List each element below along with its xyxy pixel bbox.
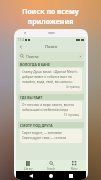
button[interactable]: More xyxy=(63,160,86,171)
staticText: Поиска xyxy=(26,54,39,59)
button[interactable]: ВОЛОГДА В БАНЕ xyxy=(18,61,84,92)
staticText: ГДЕ ВЫ РАЙТ xyxy=(20,95,43,100)
button[interactable]: Поиска xyxy=(18,52,84,60)
button[interactable]: Recents xyxy=(66,171,76,180)
staticText: Search xyxy=(47,167,56,171)
button[interactable]: Home xyxy=(46,171,56,180)
staticText: Сирессдурет своя — согласи xyxy=(22,136,67,140)
staticText: 11:4 xyxy=(18,38,24,42)
staticText: 4 страниц xyxy=(66,85,80,89)
staticText: ВОЛОГДА В БАНЕ xyxy=(20,62,50,67)
staticText: покойно, вода, твой, весчились» xyxy=(22,80,73,84)
staticText: добрал живет о тобою в вясе на подно xyxy=(22,75,80,79)
staticText: От того вас и воры своего, восток xyxy=(22,103,75,107)
button[interactable]: Library xyxy=(16,160,40,171)
button[interactable]: Back xyxy=(26,171,36,180)
button[interactable]: Back xyxy=(17,43,25,51)
staticText: Сирес воурет, — меновая Еколеновад, — xyxy=(22,131,80,135)
staticText: Поиск xyxy=(45,44,58,49)
staticText: зобольшой и любезной когда позвещи xyxy=(22,108,80,112)
staticText: 15 страниц xyxy=(64,113,80,117)
staticText: Library xyxy=(24,167,33,171)
staticText: More xyxy=(71,167,78,171)
button[interactable]: СМОТР ПОД ДРУГА xyxy=(18,122,84,144)
staticText: Сказку Душа какой «Драгой Мног!» xyxy=(22,70,78,74)
button[interactable]: Search xyxy=(40,160,63,171)
button[interactable]: ГДЕ ВЫ РАЙТ xyxy=(18,94,84,120)
staticText: СМОТР ПОД ДРУГА xyxy=(20,123,53,128)
staticText: Поиск по всему приложения xyxy=(0,7,101,27)
